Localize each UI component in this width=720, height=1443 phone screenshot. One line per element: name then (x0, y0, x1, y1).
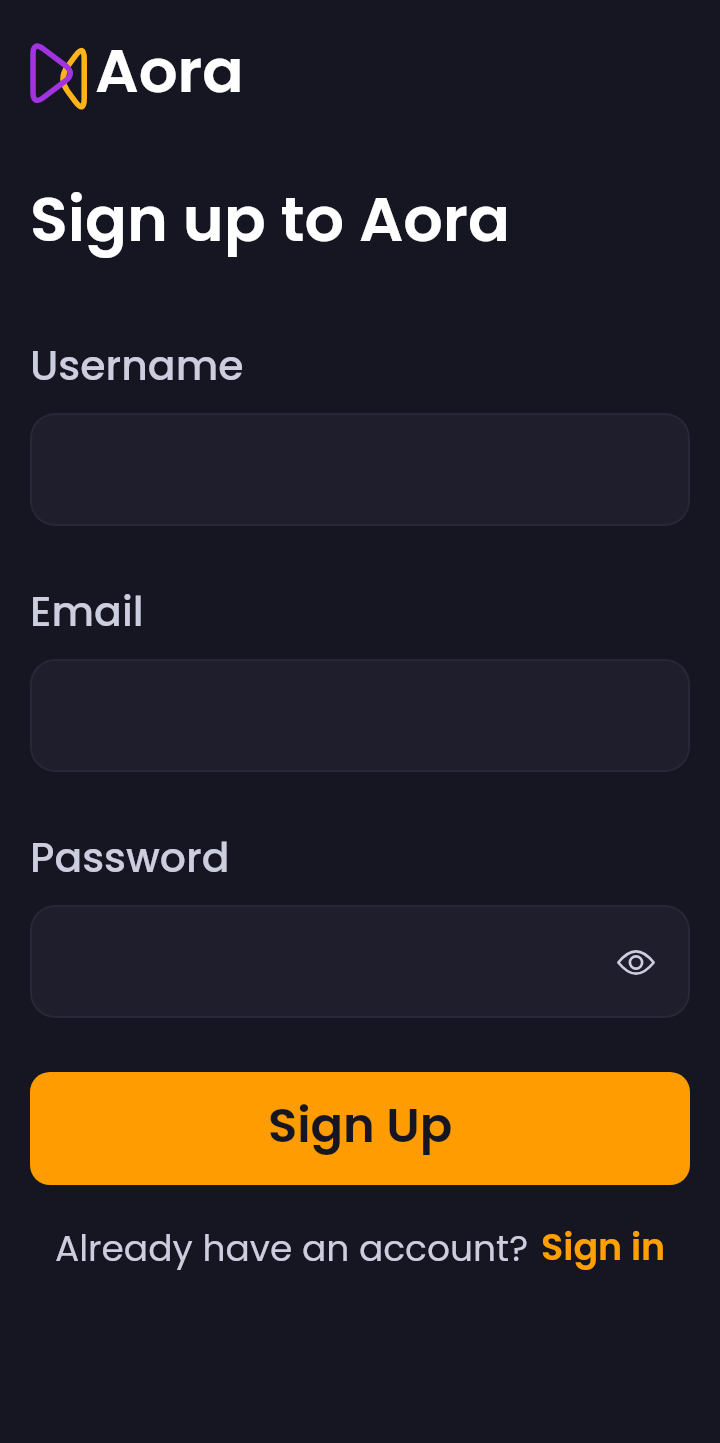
staticText: Sign in (541, 1222, 666, 1273)
staticText: Sign up to Aora (30, 176, 510, 263)
staticText: Already have an account? (55, 1223, 529, 1273)
button[interactable]: Sign Up (30, 1072, 690, 1185)
staticText: Sign Up (268, 1092, 453, 1159)
staticText: Email (30, 583, 144, 640)
staticText: Password (30, 829, 230, 886)
button[interactable]: Sign in (541, 1222, 666, 1273)
button[interactable]: Show password (30, 905, 690, 1018)
button[interactable]: Show password (614, 940, 658, 984)
staticText: Username (30, 337, 244, 394)
staticText: Aora (95, 28, 244, 113)
